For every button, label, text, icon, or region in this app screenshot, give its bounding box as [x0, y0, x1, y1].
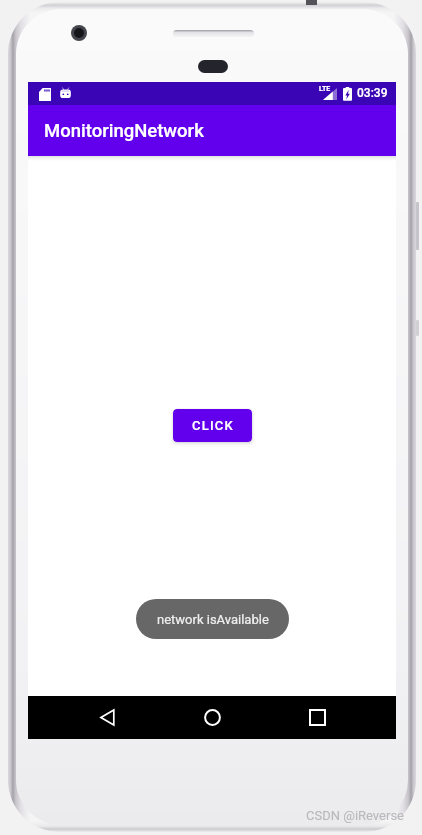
staticText: LTE	[319, 85, 331, 93]
button[interactable]: Recent apps	[291, 696, 343, 739]
staticText: MonitoringNetwork	[44, 120, 204, 142]
button[interactable]: Home	[186, 696, 238, 739]
staticText: CSDN @iReverse	[306, 808, 404, 823]
staticText: 03:39	[357, 86, 388, 100]
button[interactable]: Back	[81, 696, 133, 739]
button[interactable]: CLICK	[173, 409, 252, 442]
staticText: network isAvailable	[157, 612, 269, 627]
staticText: CLICK	[192, 418, 234, 433]
